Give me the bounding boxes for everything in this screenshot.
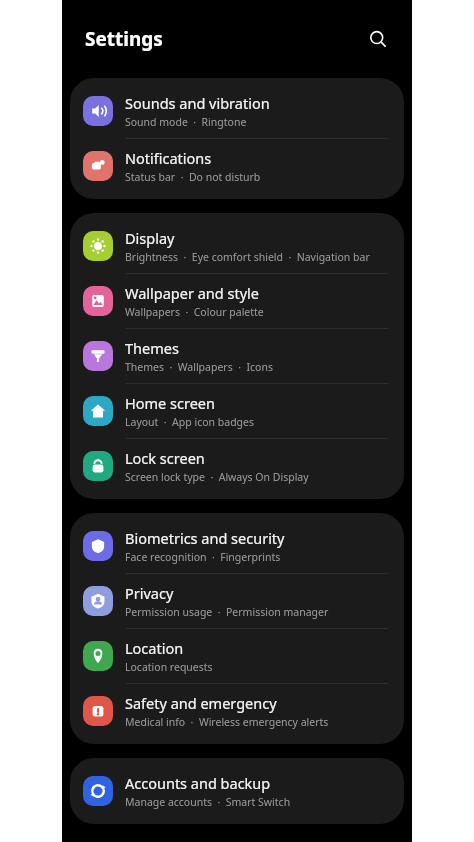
staticText: Accounts and backup	[125, 773, 271, 793]
staticText: Location	[125, 638, 184, 658]
staticText: Wallpaper and style	[125, 283, 259, 303]
staticText: Medical info · Wireless emergency alerts	[125, 715, 329, 729]
staticText: Sound mode · Ringtone	[125, 115, 247, 129]
staticText: Notifications	[125, 148, 212, 168]
button[interactable]: Themes	[70, 329, 404, 383]
button[interactable]: Accounts and backup	[70, 764, 404, 818]
button[interactable]: Home screen	[70, 384, 404, 438]
staticText: Brightness · Eye comfort shield · Naviga…	[125, 250, 370, 264]
button[interactable]: Notifications	[70, 139, 404, 193]
button[interactable]: Privacy	[70, 574, 404, 628]
staticText: Themes · Wallpapers · Icons	[125, 360, 273, 374]
staticText: Sounds and vibration	[125, 93, 270, 113]
button[interactable]: Search	[361, 22, 395, 56]
staticText: Wallpapers · Colour palette	[125, 305, 264, 319]
staticText: Manage accounts · Smart Switch	[125, 795, 291, 809]
staticText: Lock screen	[125, 448, 205, 468]
button[interactable]: Safety and emergency	[70, 684, 404, 738]
staticText: Privacy	[125, 583, 174, 603]
staticText: Face recognition · Fingerprints	[125, 550, 281, 564]
button[interactable]: Wallpaper and style	[70, 274, 404, 328]
staticText: Themes	[125, 338, 179, 358]
staticText: Settings	[85, 26, 163, 52]
staticText: Display	[125, 228, 175, 248]
staticText: Permission usage · Permission manager	[125, 605, 329, 619]
staticText: Status bar · Do not disturb	[125, 170, 261, 184]
staticText: Safety and emergency	[125, 693, 277, 713]
button[interactable]: Lock screen	[70, 439, 404, 493]
staticText: Screen lock type · Always On Display	[125, 470, 309, 484]
button[interactable]: Location	[70, 629, 404, 683]
button[interactable]: Display	[70, 219, 404, 273]
staticText: Home screen	[125, 393, 215, 413]
staticText: Biometrics and security	[125, 528, 285, 548]
staticText: Layout · App icon badges	[125, 415, 255, 429]
button[interactable]: Sounds and vibration	[70, 84, 404, 138]
button[interactable]: Biometrics and security	[70, 519, 404, 573]
staticText: Location requests	[125, 660, 213, 674]
